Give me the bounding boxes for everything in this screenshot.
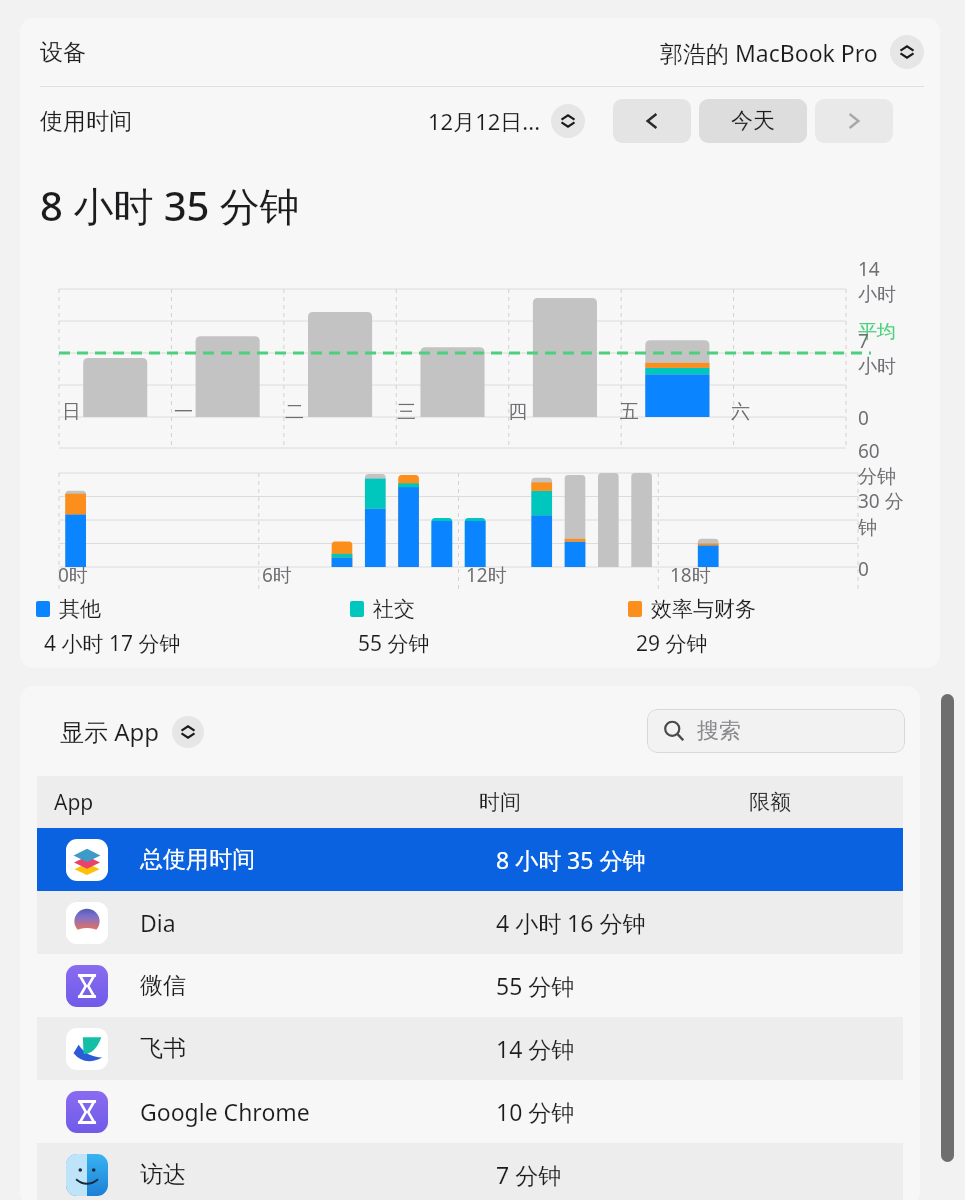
button[interactable]: 今天 bbox=[699, 99, 807, 143]
staticText: 30 分 钟 bbox=[858, 488, 904, 540]
staticText: 总使用时间 bbox=[140, 845, 255, 874]
staticText: 日 bbox=[62, 400, 81, 424]
staticText: 0 bbox=[858, 556, 869, 582]
button[interactable]: 上一天 bbox=[613, 99, 691, 143]
staticText: 8 小时 35 分钟 bbox=[496, 844, 646, 875]
staticText: 二 bbox=[285, 400, 304, 424]
staticText: 0时 bbox=[58, 562, 88, 588]
staticText: 12时 bbox=[466, 562, 507, 588]
button[interactable]: 访达 bbox=[37, 1143, 903, 1200]
staticText: 6时 bbox=[262, 562, 292, 588]
staticText: 今天 bbox=[731, 107, 775, 135]
staticText: 搜索 bbox=[697, 717, 741, 745]
button[interactable]: 总使用时间 bbox=[37, 828, 903, 891]
staticText: 时间 bbox=[479, 789, 521, 815]
staticText: 平均 bbox=[858, 320, 896, 344]
staticText: 29 分钟 bbox=[636, 629, 708, 658]
button[interactable]: 搜索 bbox=[647, 709, 905, 753]
staticText: 60 分钟 bbox=[858, 438, 896, 489]
staticText: 8 小时 35 分钟 bbox=[40, 178, 300, 233]
button[interactable]: Dia bbox=[37, 891, 903, 954]
staticText: 社交 bbox=[373, 596, 415, 622]
staticText: 四 bbox=[508, 400, 527, 424]
staticText: 使用时间 bbox=[40, 107, 132, 136]
staticText: 55 分钟 bbox=[358, 629, 430, 658]
button[interactable]: 选择日期 bbox=[428, 104, 585, 138]
staticText: 限额 bbox=[749, 789, 791, 815]
staticText: Google Chrome bbox=[140, 1096, 310, 1127]
staticText: 微信 bbox=[140, 971, 186, 1000]
staticText: 12月12日... bbox=[428, 106, 541, 136]
button[interactable]: 选择设备 bbox=[660, 35, 924, 69]
staticText: 访达 bbox=[140, 1160, 186, 1189]
staticText: 55 分钟 bbox=[496, 970, 575, 1001]
staticText: 效率与财务 bbox=[651, 596, 756, 622]
staticText: 4 小时 16 分钟 bbox=[496, 907, 646, 938]
button[interactable]: 微信 bbox=[37, 954, 903, 1017]
staticText: 三 bbox=[397, 400, 416, 424]
staticText: 4 小时 17 分钟 bbox=[44, 629, 181, 658]
staticText: 14 分钟 bbox=[496, 1033, 575, 1064]
button[interactable]: Google Chrome bbox=[37, 1080, 903, 1143]
staticText: 其他 bbox=[59, 596, 101, 622]
staticText: 0 bbox=[858, 405, 869, 431]
staticText: 一 bbox=[174, 400, 193, 424]
staticText: 18时 bbox=[670, 562, 711, 588]
staticText: 显示 App bbox=[60, 715, 160, 748]
staticText: App bbox=[54, 788, 94, 817]
staticText: 郭浩的 MacBook Pro bbox=[660, 37, 878, 68]
staticText: 设备 bbox=[40, 38, 86, 67]
staticText: 14 小时 bbox=[858, 256, 896, 307]
staticText: 7 小时 bbox=[858, 328, 896, 379]
button[interactable]: 飞书 bbox=[37, 1017, 903, 1080]
staticText: 10 分钟 bbox=[496, 1096, 575, 1127]
staticText: Dia bbox=[140, 907, 176, 938]
staticText: 飞书 bbox=[140, 1034, 186, 1063]
staticText: 六 bbox=[731, 400, 750, 424]
button[interactable]: 显示 App bbox=[60, 715, 204, 748]
button[interactable]: 下一天 bbox=[815, 99, 893, 143]
staticText: 7 分钟 bbox=[496, 1159, 562, 1190]
staticText: 五 bbox=[620, 400, 639, 424]
